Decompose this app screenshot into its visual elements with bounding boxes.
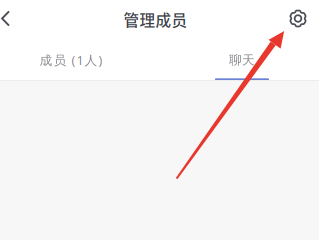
staticText: 管理成员 (123, 8, 187, 31)
staticText: 成员 (1人) (39, 51, 102, 69)
button[interactable]: 成员 (1人) (6, 38, 136, 81)
button[interactable]: 聊天 (187, 38, 297, 81)
button[interactable]: Settings (282, 0, 314, 37)
button[interactable]: Back (0, 0, 29, 37)
staticText: 聊天 (229, 52, 255, 68)
